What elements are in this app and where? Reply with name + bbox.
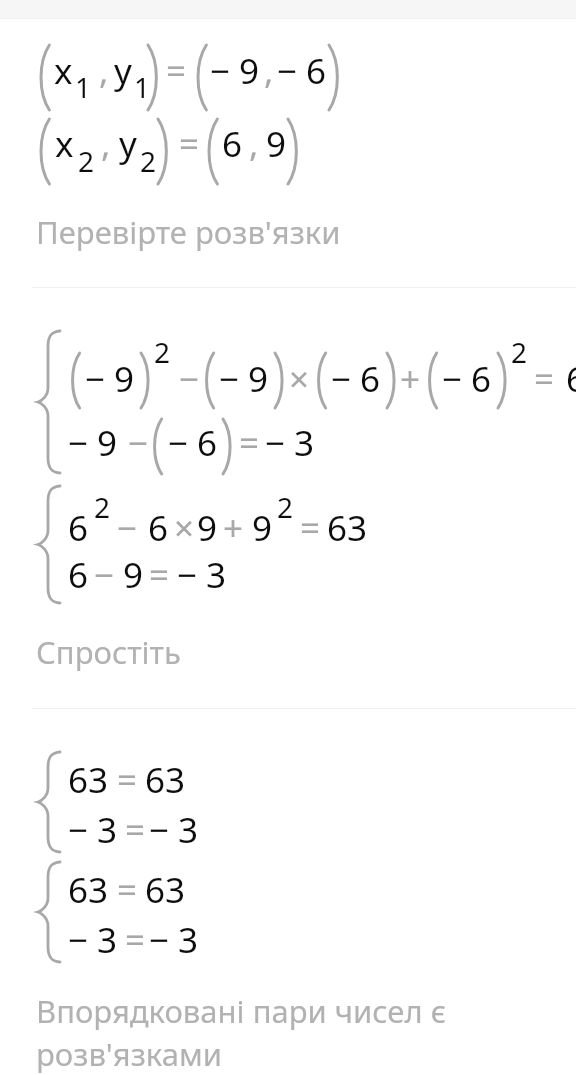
staticText: 1 — [134, 68, 151, 106]
staticText: − 3 — [68, 916, 118, 964]
staticText: = — [166, 47, 187, 95]
staticText: − 3 — [149, 916, 199, 964]
staticText: = — [179, 120, 200, 168]
staticText: − 9 — [68, 419, 118, 467]
staticText: Спростіть — [36, 631, 181, 673]
staticText: , — [264, 47, 274, 95]
staticText: 6 — [148, 504, 169, 552]
staticText: − 9 — [210, 47, 260, 95]
staticText: − — [117, 504, 138, 552]
staticText: 9 — [266, 120, 287, 168]
staticText: 63 — [327, 504, 368, 552]
staticText: + — [223, 504, 244, 552]
staticText: = — [239, 419, 260, 467]
staticText: = — [125, 916, 146, 964]
staticText: , — [249, 120, 259, 168]
staticText: − 6 — [331, 355, 381, 403]
staticText: 6 — [222, 120, 243, 168]
staticText: = — [117, 866, 138, 914]
staticText: x — [55, 120, 74, 168]
staticText: − 6 — [277, 47, 327, 95]
staticText: y — [114, 47, 132, 95]
staticText: 9 — [123, 551, 144, 599]
staticText: = — [117, 756, 138, 804]
staticText: − — [128, 419, 149, 467]
staticText: Перевірте розв'язки — [36, 211, 341, 253]
staticText: − 9 — [85, 355, 135, 403]
staticText: 63 — [68, 866, 109, 914]
staticText: 1 — [75, 68, 92, 106]
staticText: − 3 — [265, 419, 315, 467]
staticText: − — [94, 551, 115, 599]
staticText: 9 — [252, 504, 273, 552]
staticText: 6 — [68, 504, 89, 552]
staticText: 2 — [140, 142, 157, 180]
staticText: − 3 — [68, 806, 118, 854]
staticText: 2 — [94, 488, 111, 526]
staticText: − 3 — [149, 806, 199, 854]
staticText: = — [300, 504, 321, 552]
staticText: = — [125, 806, 146, 854]
staticText: 2 — [511, 333, 528, 371]
staticText: − 3 — [177, 551, 227, 599]
staticText: 2 — [154, 333, 171, 371]
staticText: Впорядковані пари чисел є розв'язками — [36, 990, 446, 1075]
staticText: 9 — [197, 504, 218, 552]
staticText: , — [99, 47, 109, 95]
staticText: , — [101, 120, 111, 168]
staticText: 63 — [68, 756, 109, 804]
staticText: x — [54, 47, 73, 95]
staticText: 63 — [566, 355, 576, 403]
staticText: = — [149, 551, 170, 599]
staticText: − — [179, 355, 200, 403]
staticText: 63 — [145, 756, 186, 804]
staticText: y — [119, 120, 137, 168]
staticText: 2 — [277, 488, 294, 526]
button[interactable]: Впорядковані пари чисел є розв'язками — [0, 709, 576, 1075]
button[interactable]: Перевірте розв'язки — [0, 19, 576, 288]
staticText: 2 — [78, 142, 95, 180]
staticText: − 6 — [168, 419, 218, 467]
staticText: 63 — [145, 866, 186, 914]
staticText: − 6 — [442, 355, 492, 403]
staticText: − 9 — [219, 355, 269, 403]
staticText: × — [174, 504, 195, 552]
button[interactable]: Спростіть — [0, 288, 576, 708]
staticText: 6 — [68, 551, 89, 599]
staticText: = — [534, 355, 555, 403]
staticText: + — [400, 355, 421, 403]
staticText: × — [289, 355, 310, 403]
